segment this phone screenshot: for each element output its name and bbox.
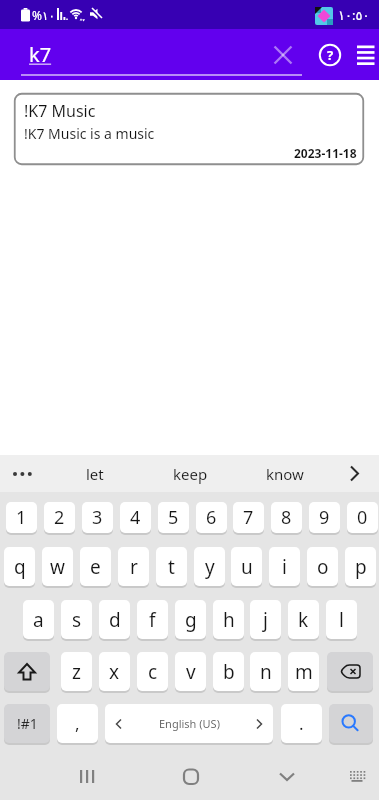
staticText: k7: [29, 41, 52, 68]
button[interactable]: [329, 704, 373, 743]
button[interactable]: n: [250, 652, 281, 691]
staticText: h: [223, 607, 235, 633]
staticText: 5: [168, 505, 179, 530]
button[interactable]: b: [213, 652, 244, 691]
staticText: ?: [327, 46, 334, 64]
button[interactable]: 5: [158, 502, 189, 533]
staticText: f: [149, 607, 156, 633]
button[interactable]: [352, 38, 379, 72]
button[interactable]: ,: [57, 704, 98, 743]
button[interactable]: r: [118, 547, 149, 586]
button[interactable]: 9: [309, 502, 340, 533]
staticText: ,: [75, 712, 80, 735]
staticText: i: [282, 554, 287, 580]
staticText: k: [298, 607, 309, 633]
staticText: z: [72, 659, 81, 685]
button[interactable]: 1: [6, 502, 37, 533]
staticText: x: [109, 659, 120, 685]
button[interactable]: [267, 756, 307, 796]
button[interactable]: l: [326, 600, 357, 639]
staticText: g: [185, 607, 197, 633]
button[interactable]: [4, 652, 50, 691]
button[interactable]: v: [175, 652, 206, 691]
button[interactable]: d: [99, 600, 130, 639]
button[interactable]: English (US): [105, 704, 273, 743]
staticText: !K7 Music is a music: [24, 124, 155, 143]
staticText: u: [241, 554, 253, 580]
button[interactable]: [338, 455, 374, 492]
staticText: let: [86, 464, 104, 484]
staticText: j: [263, 607, 268, 633]
button[interactable]: know: [250, 455, 320, 492]
staticText: p: [355, 554, 367, 580]
staticText: l: [339, 607, 344, 633]
staticText: w: [50, 554, 65, 580]
staticText: b: [223, 659, 235, 685]
staticText: English (US): [159, 716, 220, 731]
button[interactable]: !#1: [4, 704, 50, 743]
button[interactable]: u: [231, 547, 262, 586]
staticText: 8: [281, 505, 292, 530]
staticText: .: [299, 712, 304, 735]
button[interactable]: a: [23, 600, 54, 639]
button[interactable]: .: [281, 704, 322, 743]
button[interactable]: c: [137, 652, 168, 691]
button[interactable]: 8: [271, 502, 302, 533]
button[interactable]: [6, 455, 42, 492]
staticText: 2: [54, 505, 65, 530]
button[interactable]: [327, 652, 373, 691]
staticText: q: [14, 554, 26, 580]
staticText: 9: [319, 505, 330, 530]
staticText: 6: [206, 505, 217, 530]
button[interactable]: y: [194, 547, 225, 586]
staticText: s: [72, 607, 82, 633]
staticText: 4: [130, 505, 141, 530]
staticText: %١٠٠: [32, 7, 62, 23]
button[interactable]: keep: [155, 455, 225, 492]
button[interactable]: k: [288, 600, 319, 639]
button[interactable]: z: [61, 652, 92, 691]
staticText: 1: [16, 505, 27, 530]
staticText: e: [90, 554, 101, 580]
button[interactable]: [338, 756, 378, 796]
button[interactable]: w: [42, 547, 73, 586]
button[interactable]: ?: [313, 38, 347, 72]
button[interactable]: [266, 38, 300, 72]
button[interactable]: 0: [347, 502, 378, 533]
button[interactable]: e: [80, 547, 111, 586]
staticText: n: [260, 659, 272, 685]
button[interactable]: 7: [233, 502, 264, 533]
button[interactable]: f: [137, 600, 168, 639]
staticText: 2023-11-18: [294, 145, 357, 161]
button[interactable]: !K7 Music: [14, 93, 364, 165]
staticText: r: [130, 554, 138, 580]
button[interactable]: p: [345, 547, 376, 586]
button[interactable]: 6: [196, 502, 227, 533]
button[interactable]: g: [175, 600, 206, 639]
staticText: c: [148, 659, 158, 685]
staticText: v: [186, 659, 196, 685]
button[interactable]: x: [99, 652, 130, 691]
button[interactable]: m: [288, 652, 319, 691]
staticText: 0: [357, 505, 368, 530]
button[interactable]: h: [213, 600, 244, 639]
button[interactable]: [68, 756, 108, 796]
button[interactable]: j: [250, 600, 281, 639]
button[interactable]: 2: [44, 502, 75, 533]
staticText: !#1: [17, 714, 38, 733]
staticText: a: [33, 607, 44, 633]
button[interactable]: q: [4, 547, 35, 586]
button[interactable]: s: [61, 600, 92, 639]
button[interactable]: o: [307, 547, 338, 586]
button[interactable]: i: [269, 547, 300, 586]
button[interactable]: let: [60, 455, 130, 492]
staticText: !K7 Music: [24, 100, 96, 122]
staticText: o: [317, 554, 329, 580]
staticText: ١٠:٥٠: [338, 6, 370, 24]
button[interactable]: [171, 756, 211, 796]
button[interactable]: 4: [120, 502, 151, 533]
button[interactable]: 3: [82, 502, 113, 533]
staticText: 7: [243, 505, 254, 530]
staticText: know: [266, 464, 304, 484]
button[interactable]: t: [156, 547, 187, 586]
